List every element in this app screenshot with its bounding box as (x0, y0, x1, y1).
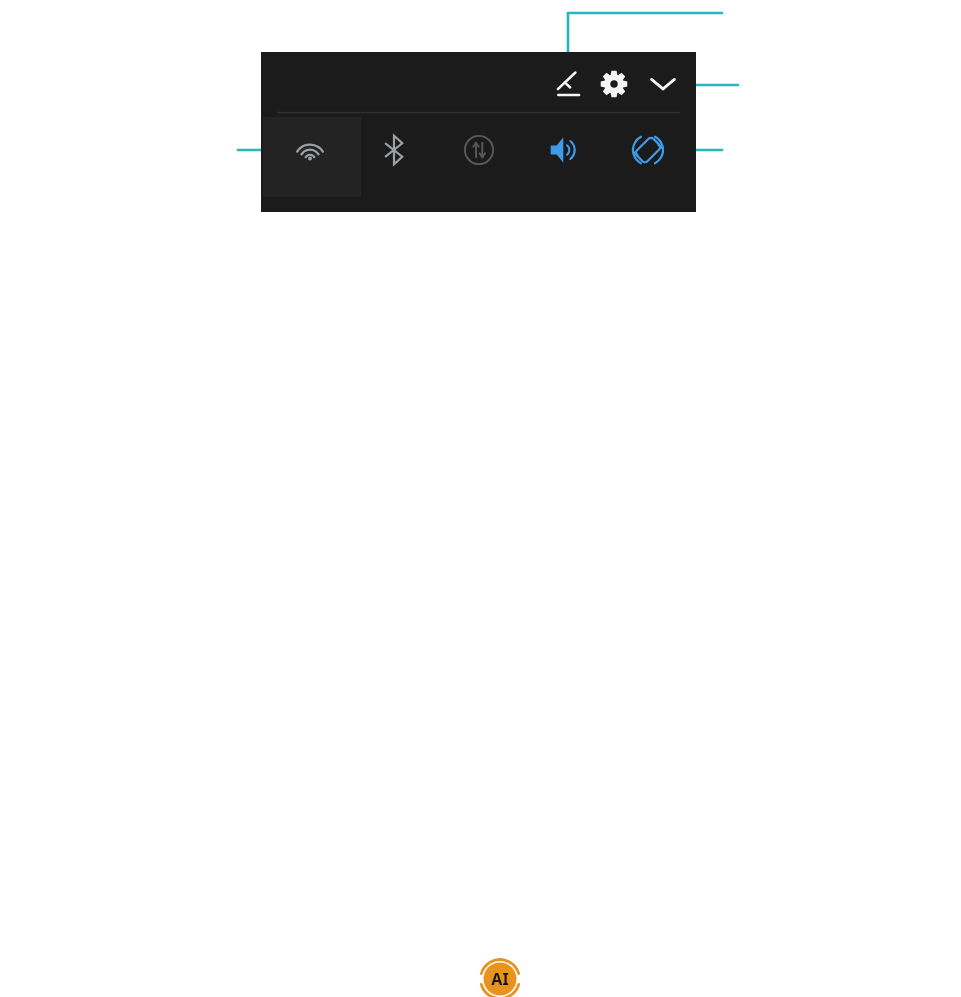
staticText: AI (488, 968, 512, 990)
button[interactable]: Collapse (641, 61, 685, 105)
button[interactable]: Settings (592, 62, 636, 106)
button[interactable]: Edit (546, 62, 590, 106)
button[interactable]: Wi-Fi (286, 126, 334, 174)
button[interactable]: Bluetooth (370, 126, 418, 174)
button[interactable]: Auto rotate (624, 126, 672, 174)
button[interactable]: Mobile data (455, 126, 503, 174)
button[interactable]: Volume (539, 126, 587, 174)
